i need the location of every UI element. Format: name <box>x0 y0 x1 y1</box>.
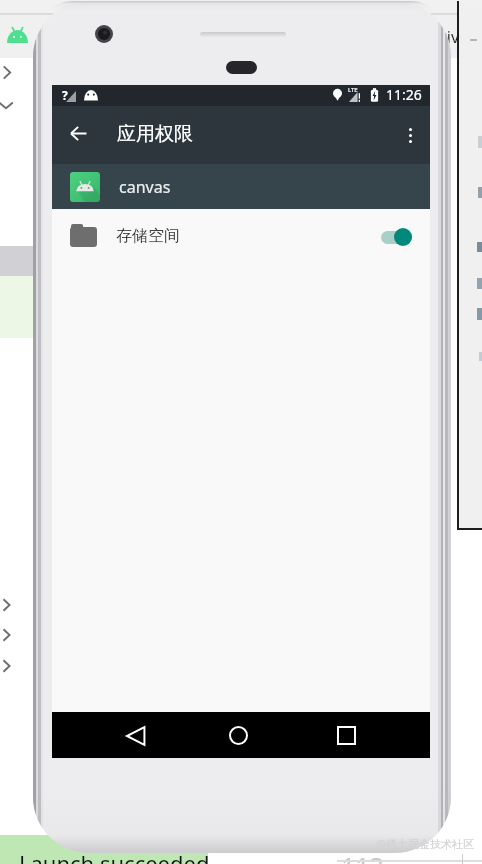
staticText: tiv <box>441 26 460 48</box>
staticText: 存储空间 <box>116 226 180 246</box>
staticText: @稀土掘金技术社区 <box>376 836 474 851</box>
button[interactable]: Recents <box>325 714 368 757</box>
staticText: Launch succeeded <box>19 848 210 864</box>
button[interactable]: Toggle storage permission <box>377 215 425 259</box>
staticText: ? <box>62 87 68 103</box>
button[interactable]: Back <box>56 111 100 155</box>
button[interactable]: canvas <box>52 164 430 209</box>
button[interactable]: More options <box>390 115 430 155</box>
staticText: LTE <box>348 86 358 94</box>
button[interactable]: Home <box>217 714 260 757</box>
staticText: 113 <box>341 849 384 864</box>
button[interactable]: 存储空间 <box>52 209 430 265</box>
staticText: 11:26 <box>386 85 422 104</box>
button[interactable]: Back <box>114 714 157 757</box>
staticText: canvas <box>119 176 171 198</box>
staticText: 应用权限 <box>117 122 193 146</box>
